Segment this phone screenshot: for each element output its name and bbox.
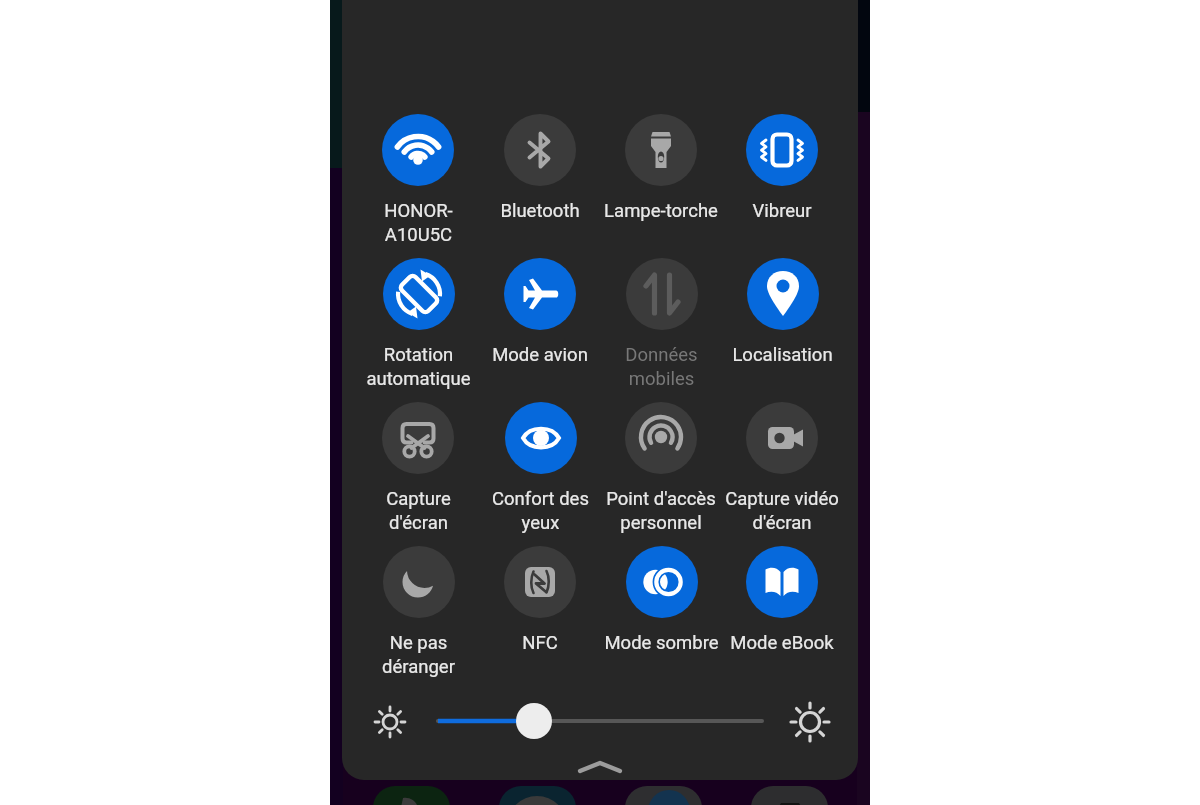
staticText: Données mobiles — [625, 344, 698, 390]
button[interactable]: Collapse panel — [568, 750, 632, 782]
button[interactable]: NFC — [478, 546, 602, 686]
button[interactable]: Capture d'écran — [356, 402, 480, 542]
staticText: Localisation — [732, 344, 833, 366]
button[interactable]: Lampe-torche — [599, 114, 723, 254]
button[interactable]: Increase brightness — [786, 698, 834, 746]
staticText: HONOR- A10U5C — [384, 200, 453, 246]
staticText: Mode avion — [492, 344, 588, 366]
staticText: Point d'accès personnel — [606, 488, 716, 534]
staticText: Capture vidéo d'écran — [725, 488, 839, 534]
staticText: Confort des yeux — [492, 488, 589, 534]
button[interactable]: Mode avion — [478, 258, 602, 398]
staticText: Bluetooth — [500, 200, 580, 222]
button[interactable]: HONOR- A10U5C — [356, 114, 480, 254]
staticText: Rotation automatique — [366, 344, 471, 390]
button[interactable]: Localisation — [720, 258, 844, 398]
button[interactable]: Données mobiles — [599, 258, 723, 398]
button[interactable]: Mode eBook — [720, 546, 844, 686]
button[interactable]: Bluetooth — [478, 114, 602, 254]
staticText: Capture d'écran — [386, 488, 451, 534]
staticText: Ne pas déranger — [382, 632, 455, 678]
button[interactable]: Decrease brightness — [366, 698, 414, 746]
button[interactable]: Point d'accès personnel — [599, 402, 723, 542]
staticText: Vibreur — [752, 200, 812, 222]
button[interactable]: Brightness slider — [430, 700, 775, 744]
staticText: NFC — [522, 632, 558, 654]
button[interactable]: Mode sombre — [599, 546, 723, 686]
button[interactable]: Rotation automatique — [356, 258, 480, 398]
staticText: Mode sombre — [604, 632, 719, 654]
button[interactable]: Ne pas déranger — [356, 546, 480, 686]
staticText: Mode eBook — [730, 632, 834, 654]
staticText: Lampe-torche — [604, 200, 718, 222]
button[interactable]: Capture vidéo d'écran — [720, 402, 844, 542]
button[interactable]: Confort des yeux — [478, 402, 602, 542]
button[interactable]: Vibreur — [720, 114, 844, 254]
